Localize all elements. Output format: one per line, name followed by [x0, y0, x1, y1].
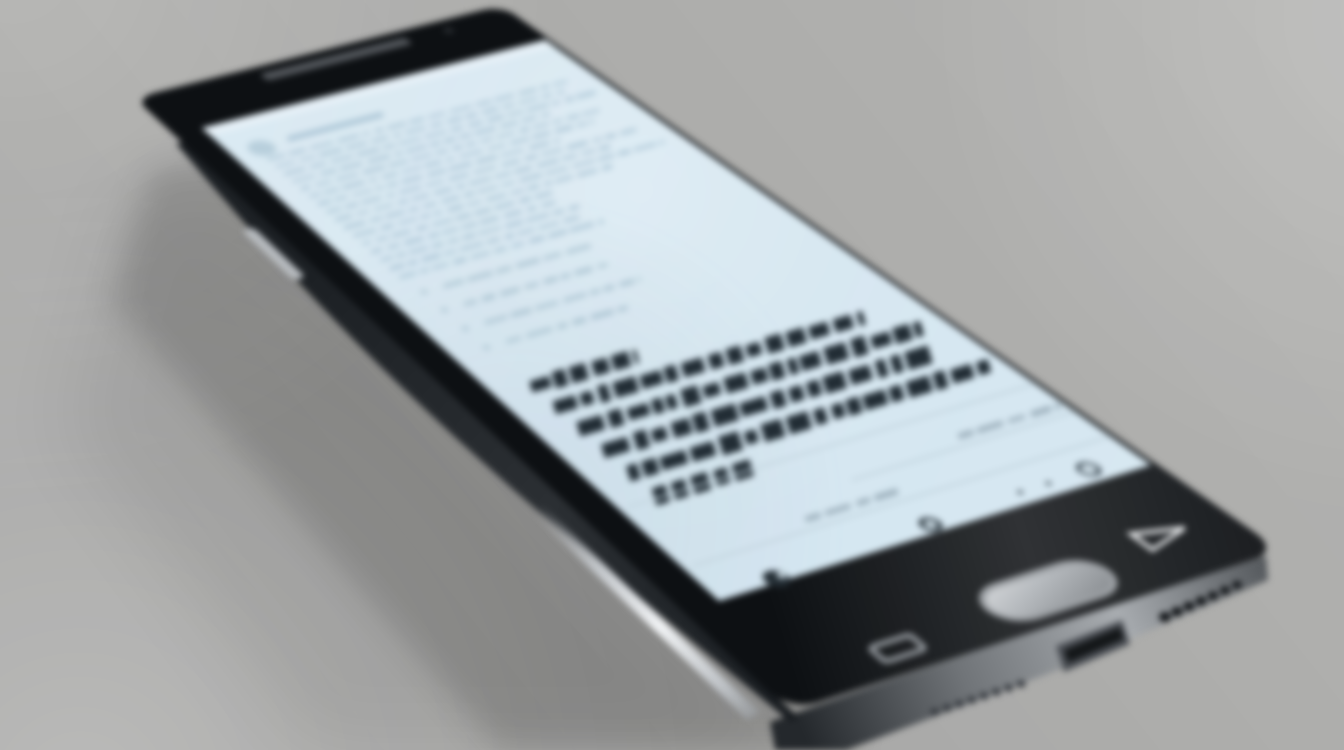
button[interactable]: Profile picture: [241, 138, 283, 159]
button[interactable]: Recent apps: [867, 633, 928, 663]
button[interactable]: Home: [952, 554, 1134, 635]
button[interactable]: More options: [1069, 459, 1109, 480]
button[interactable]: Back: [1129, 520, 1195, 550]
other: Smartphone displaying an article: [0, 0, 1344, 750]
button[interactable]: Volume: [233, 237, 295, 287]
button[interactable]: Refresh: [912, 514, 950, 535]
button[interactable]: Account: [755, 566, 798, 591]
